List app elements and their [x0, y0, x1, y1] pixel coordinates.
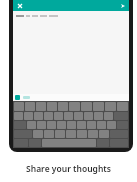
button[interactable]: Send: [119, 2, 126, 9]
staticText: Share your thoughts: [26, 163, 111, 175]
button[interactable]: Emoji: [15, 95, 20, 100]
button[interactable]: Close: [16, 2, 23, 9]
button[interactable]: [23, 96, 30, 99]
button[interactable]: [13, 11, 129, 94]
